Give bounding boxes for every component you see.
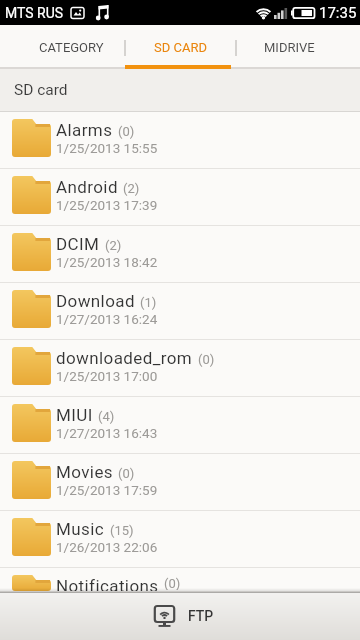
- staticText: (0): [164, 576, 181, 590]
- staticText: FTP: [188, 608, 214, 624]
- staticText: Alarms: [56, 120, 113, 140]
- staticText: 1/26/2013 22:06: [56, 539, 158, 555]
- staticText: 1/25/2013 17:00: [56, 368, 158, 384]
- button[interactable]: FTP: [154, 605, 214, 627]
- button[interactable]: DCIM: [0, 226, 360, 283]
- staticText: DCIM: [56, 234, 100, 254]
- staticText: 1/27/2013 16:24: [56, 311, 158, 327]
- staticText: (0): [118, 124, 135, 139]
- staticText: downloaded_rom: [56, 348, 193, 368]
- staticText: (1): [140, 295, 157, 310]
- staticText: (2): [105, 238, 122, 253]
- button[interactable]: Music: [0, 511, 360, 568]
- staticText: (0): [198, 352, 215, 367]
- staticText: Movies: [56, 462, 113, 482]
- staticText: MIUI: [56, 405, 93, 425]
- button[interactable]: Alarms: [0, 112, 360, 169]
- staticText: 1/25/2013 17:59: [56, 482, 158, 498]
- staticText: SD card: [14, 81, 68, 99]
- staticText: (2): [123, 181, 140, 196]
- button[interactable]: MIDRIVE: [235, 25, 344, 69]
- staticText: (4): [98, 409, 115, 424]
- button[interactable]: downloaded_rom: [0, 340, 360, 397]
- staticText: (0): [118, 466, 135, 481]
- staticText: Music: [56, 519, 105, 539]
- staticText: MTS RUS: [5, 5, 64, 21]
- staticText: SD CARD: [154, 40, 207, 55]
- button[interactable]: Movies: [0, 454, 360, 511]
- staticText: 1/25/2013 15:55: [56, 140, 158, 156]
- staticText: 17:35: [319, 4, 357, 22]
- button[interactable]: MIUI: [0, 397, 360, 454]
- staticText: CATEGORY: [39, 40, 104, 55]
- staticText: Notifications: [56, 576, 159, 591]
- staticText: 1/25/2013 18:42: [56, 254, 158, 270]
- staticText: 1/27/2013 16:43: [56, 425, 158, 441]
- staticText: 1/25/2013 17:39: [56, 197, 158, 213]
- staticText: Download: [56, 291, 135, 311]
- button[interactable]: CATEGORY: [16, 25, 126, 69]
- button[interactable]: Android: [0, 169, 360, 226]
- staticText: Android: [56, 177, 118, 197]
- staticText: (15): [110, 523, 134, 538]
- button[interactable]: Download: [0, 283, 360, 340]
- button[interactable]: SD CARD: [126, 25, 235, 69]
- button[interactable]: Notifications: [0, 568, 360, 592]
- staticText: MIDRIVE: [264, 40, 315, 55]
